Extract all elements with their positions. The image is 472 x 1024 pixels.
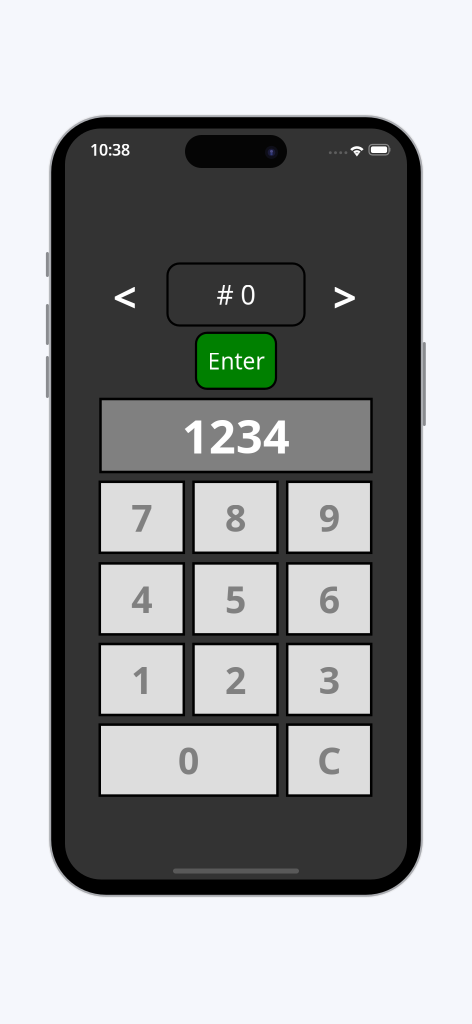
button[interactable]: 7 — [100, 482, 184, 553]
staticText: 8 — [225, 492, 246, 542]
button[interactable]: 1 — [100, 644, 184, 715]
button[interactable]: 3 — [287, 644, 371, 715]
staticText: < — [113, 269, 137, 324]
button[interactable]: Enter — [196, 333, 276, 389]
button[interactable]: 0 — [100, 725, 277, 796]
staticText: C — [317, 735, 341, 785]
button[interactable]: 8 — [193, 482, 277, 553]
button[interactable]: 2 — [193, 644, 277, 715]
button[interactable]: 4 — [100, 563, 184, 634]
staticText: 4 — [131, 574, 152, 624]
staticText: 10:38 — [90, 139, 130, 160]
staticText: 3 — [319, 655, 340, 704]
button[interactable]: C — [287, 725, 371, 796]
staticText: # 0 — [216, 277, 255, 312]
button[interactable]: 5 — [193, 563, 277, 634]
staticText: 9 — [319, 492, 340, 542]
button[interactable]: 6 — [287, 563, 371, 634]
staticText: 7 — [131, 492, 152, 542]
staticText: 5 — [225, 574, 246, 624]
staticText: > — [333, 269, 357, 324]
staticText: 6 — [319, 574, 340, 624]
button[interactable]: # 0 — [167, 263, 304, 325]
staticText: 1 — [131, 655, 152, 704]
button[interactable]: 9 — [287, 482, 371, 553]
button[interactable]: Previous — [102, 270, 148, 322]
staticText: 0 — [178, 735, 199, 785]
staticText: Enter — [207, 346, 264, 376]
button[interactable]: Next — [322, 270, 368, 322]
staticText: 1234 — [182, 404, 290, 466]
staticText: 2 — [225, 655, 246, 704]
